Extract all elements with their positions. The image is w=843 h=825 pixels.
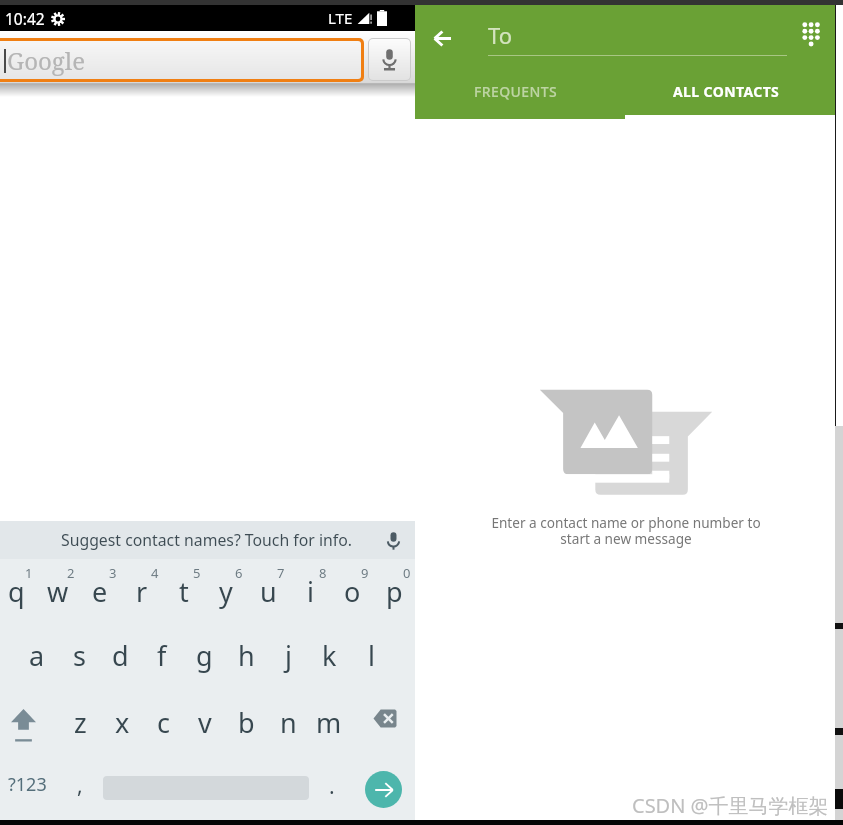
button[interactable]: .	[314, 755, 350, 813]
staticText: o	[344, 573, 361, 610]
staticText: d	[112, 637, 129, 674]
staticText: ALL CONTACTS	[673, 82, 780, 101]
button[interactable]: y	[205, 561, 247, 621]
button[interactable]: g	[183, 625, 225, 685]
button[interactable]: e	[79, 561, 121, 621]
button[interactable]: w	[37, 561, 79, 621]
staticText: e	[92, 573, 108, 610]
staticText: x	[115, 704, 130, 741]
button[interactable]: o	[331, 561, 373, 621]
button[interactable]: d	[99, 625, 141, 685]
staticText: u	[260, 573, 277, 610]
staticText: r	[136, 573, 148, 610]
staticText: q	[8, 573, 25, 610]
staticText: n	[280, 704, 297, 741]
staticText: 6	[235, 564, 243, 578]
button[interactable]: Send	[365, 771, 402, 808]
button[interactable]: k	[308, 625, 350, 685]
button[interactable]: s	[58, 625, 100, 685]
button[interactable]: q	[0, 561, 37, 621]
button[interactable]: Google	[0, 41, 361, 79]
button[interactable]: l	[350, 625, 392, 685]
staticText: 4	[151, 564, 159, 578]
button[interactable]: Backspace	[362, 693, 407, 743]
staticText: 3	[109, 564, 117, 578]
staticText: 0	[403, 564, 411, 578]
staticText: 1	[25, 564, 33, 578]
button[interactable]: ,	[62, 755, 98, 813]
staticText: 9	[361, 564, 369, 578]
button[interactable]: b	[225, 692, 267, 752]
button[interactable]: x	[101, 692, 143, 752]
button[interactable]: c	[142, 692, 184, 752]
button[interactable]: v	[184, 692, 226, 752]
staticText: b	[238, 704, 255, 741]
staticText: i	[307, 573, 314, 610]
staticText: 7	[277, 564, 285, 578]
button[interactable]: Back	[420, 16, 464, 60]
staticText: 2	[67, 564, 75, 578]
button[interactable]: Dialpad	[789, 12, 833, 56]
staticText: a	[29, 637, 45, 674]
button[interactable]: ALL CONTACTS	[625, 74, 835, 119]
staticText: h	[238, 637, 255, 674]
staticText: .	[329, 772, 335, 801]
button[interactable]: u	[247, 561, 289, 621]
button[interactable]: t	[163, 561, 205, 621]
staticText: Suggest contact names? Touch for info.	[61, 529, 352, 551]
staticText: Google	[7, 44, 86, 77]
staticText: z	[74, 704, 87, 741]
staticText: ?123	[8, 772, 47, 797]
button[interactable]: ?123	[0, 755, 56, 813]
button[interactable]: n	[267, 692, 309, 752]
staticText: f	[157, 637, 167, 674]
staticText: p	[386, 573, 403, 610]
staticText: w	[47, 573, 69, 610]
staticText: g	[196, 637, 213, 674]
button[interactable]: h	[225, 625, 267, 685]
staticText: 10:42	[5, 8, 45, 29]
staticText: t	[179, 573, 189, 610]
button[interactable]: p	[373, 561, 415, 621]
staticText: m	[316, 704, 342, 741]
staticText: l	[368, 637, 375, 674]
staticText: ,	[77, 771, 83, 800]
staticText: To	[488, 20, 513, 50]
staticText: 5	[193, 564, 201, 578]
staticText: Enter a contact name or phone number to …	[451, 513, 801, 548]
button[interactable]: j	[267, 625, 309, 685]
button[interactable]: m	[308, 692, 350, 752]
staticText: v	[198, 704, 212, 741]
staticText: FREQUENTS	[474, 82, 558, 101]
button[interactable]: r	[121, 561, 163, 621]
button[interactable]: Shift	[0, 700, 47, 750]
button[interactable]: Voice search	[369, 39, 410, 80]
staticText: LTE	[328, 8, 353, 28]
button[interactable]: f	[141, 625, 183, 685]
button[interactable]: i	[289, 561, 331, 621]
staticText: y	[219, 573, 233, 610]
staticText: s	[73, 637, 86, 674]
button[interactable]: z	[59, 692, 101, 752]
staticText: k	[322, 637, 337, 674]
staticText: 8	[319, 564, 327, 578]
staticText: j	[285, 637, 292, 674]
button[interactable]: a	[16, 625, 58, 685]
button[interactable]: Suggest contact names? Touch for info.	[0, 521, 415, 559]
button[interactable]: FREQUENTS	[415, 74, 625, 119]
staticText: c	[157, 704, 170, 741]
staticText: CSDN @千里马学框架	[632, 792, 829, 819]
